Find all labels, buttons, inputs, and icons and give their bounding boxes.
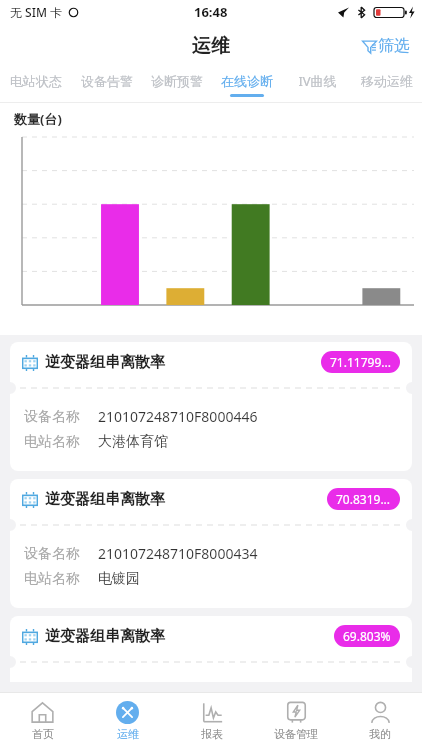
staticText: 大港体育馆 xyxy=(98,433,168,451)
staticText: 电站名称 xyxy=(24,570,80,588)
button[interactable]: 设备告警 xyxy=(71,68,142,102)
staticText: 移动运维 xyxy=(361,73,413,89)
staticText: 70.8319... xyxy=(336,491,391,507)
button[interactable]: 移动运维 xyxy=(352,68,422,102)
other: 首页 xyxy=(31,701,54,724)
staticText: 71.11799... xyxy=(330,354,391,370)
button[interactable]: 运维 xyxy=(85,692,170,750)
button[interactable]: 设备名称 xyxy=(10,394,412,471)
button[interactable]: 逆变器组串离散率 xyxy=(10,342,412,382)
staticText: 诊断预警 xyxy=(151,73,203,89)
button[interactable]: 设备管理 xyxy=(254,692,338,750)
staticText: 210107248710F8000434 xyxy=(98,544,258,563)
staticText: 筛选 xyxy=(378,36,410,56)
other: 运维 xyxy=(116,701,139,724)
staticText: 电站名称 xyxy=(24,433,80,451)
staticText: 在线诊断 xyxy=(221,73,273,89)
staticText: 设备管理 xyxy=(274,727,318,741)
staticText: 首页 xyxy=(32,727,54,741)
staticText: 设备告警 xyxy=(81,73,133,89)
button[interactable]: 在线诊断 xyxy=(212,68,282,102)
staticText: 数量(台) xyxy=(14,110,62,128)
staticText: 电镀园 xyxy=(98,570,140,588)
staticText: 逆变器组串离散率 xyxy=(45,490,165,509)
button[interactable]: 设备名称 xyxy=(10,531,412,608)
staticText: 无 SIM 卡 xyxy=(10,4,63,20)
staticText: 运维 xyxy=(117,727,139,741)
staticText: 逆变器组串离散率 xyxy=(45,627,165,646)
button[interactable]: 逆变器组串离散率 xyxy=(10,479,412,519)
button[interactable]: 筛选 xyxy=(358,32,414,60)
staticText: 逆变器组串离散率 xyxy=(45,353,165,372)
staticText: 我的 xyxy=(369,727,391,741)
staticText: 设备名称 xyxy=(24,408,80,426)
staticText: 运维 xyxy=(192,34,230,58)
other: 我的 xyxy=(369,701,392,724)
button[interactable]: 逆变器组串离散率 xyxy=(10,616,412,656)
button[interactable]: 我的 xyxy=(338,692,422,750)
button[interactable]: 电站状态 xyxy=(0,68,71,102)
button[interactable]: IV曲线 xyxy=(282,68,352,102)
button[interactable]: 首页 xyxy=(0,692,85,750)
staticText: 报表 xyxy=(201,727,223,741)
button[interactable]: 诊断预警 xyxy=(142,68,212,102)
staticText: IV曲线 xyxy=(298,72,337,90)
staticText: 210107248710F8000446 xyxy=(98,407,258,426)
staticText: 16:48 xyxy=(194,3,228,21)
other: 设备管理 xyxy=(285,701,308,724)
button[interactable]: 报表 xyxy=(170,692,254,750)
staticText: 电站状态 xyxy=(10,73,62,89)
staticText: 69.803% xyxy=(343,628,391,644)
staticText: 设备名称 xyxy=(24,545,80,563)
other: 报表 xyxy=(201,701,224,724)
